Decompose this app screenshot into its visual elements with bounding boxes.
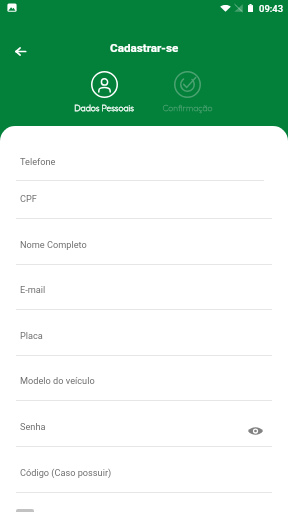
staticText: 09:43 [259, 3, 284, 14]
button[interactable]: E-mail [0, 264, 288, 310]
button[interactable]: Back [7, 38, 33, 64]
button[interactable]: Nome Completo [0, 219, 288, 265]
button[interactable]: Placa [0, 310, 288, 356]
staticText: Telefone [20, 156, 56, 167]
staticText: Senha [20, 421, 46, 432]
button[interactable] [16, 509, 34, 512]
button[interactable]: Confirmação [162, 71, 213, 113]
staticText: Dados Pessoais [74, 102, 134, 113]
staticText: Placa [20, 330, 43, 341]
staticText: Modelo do veículo [20, 375, 95, 386]
button[interactable]: Dados Pessoais [74, 71, 134, 113]
staticText: Nome Completo [20, 239, 87, 250]
staticText: Código (Caso possuir) [20, 467, 112, 478]
staticText: Cadastrar-se [110, 41, 179, 55]
staticText: E-mail [20, 284, 46, 295]
staticText: Confirmação [162, 102, 213, 113]
button[interactable]: Telefone [0, 126, 288, 181]
button[interactable]: Senha [0, 401, 288, 447]
other: Show password [248, 426, 263, 436]
staticText: CPF [20, 193, 37, 204]
button[interactable]: CPF [0, 181, 288, 219]
button[interactable]: Modelo do veículo [0, 355, 288, 401]
button[interactable]: Código (Caso possuir) [0, 447, 288, 493]
